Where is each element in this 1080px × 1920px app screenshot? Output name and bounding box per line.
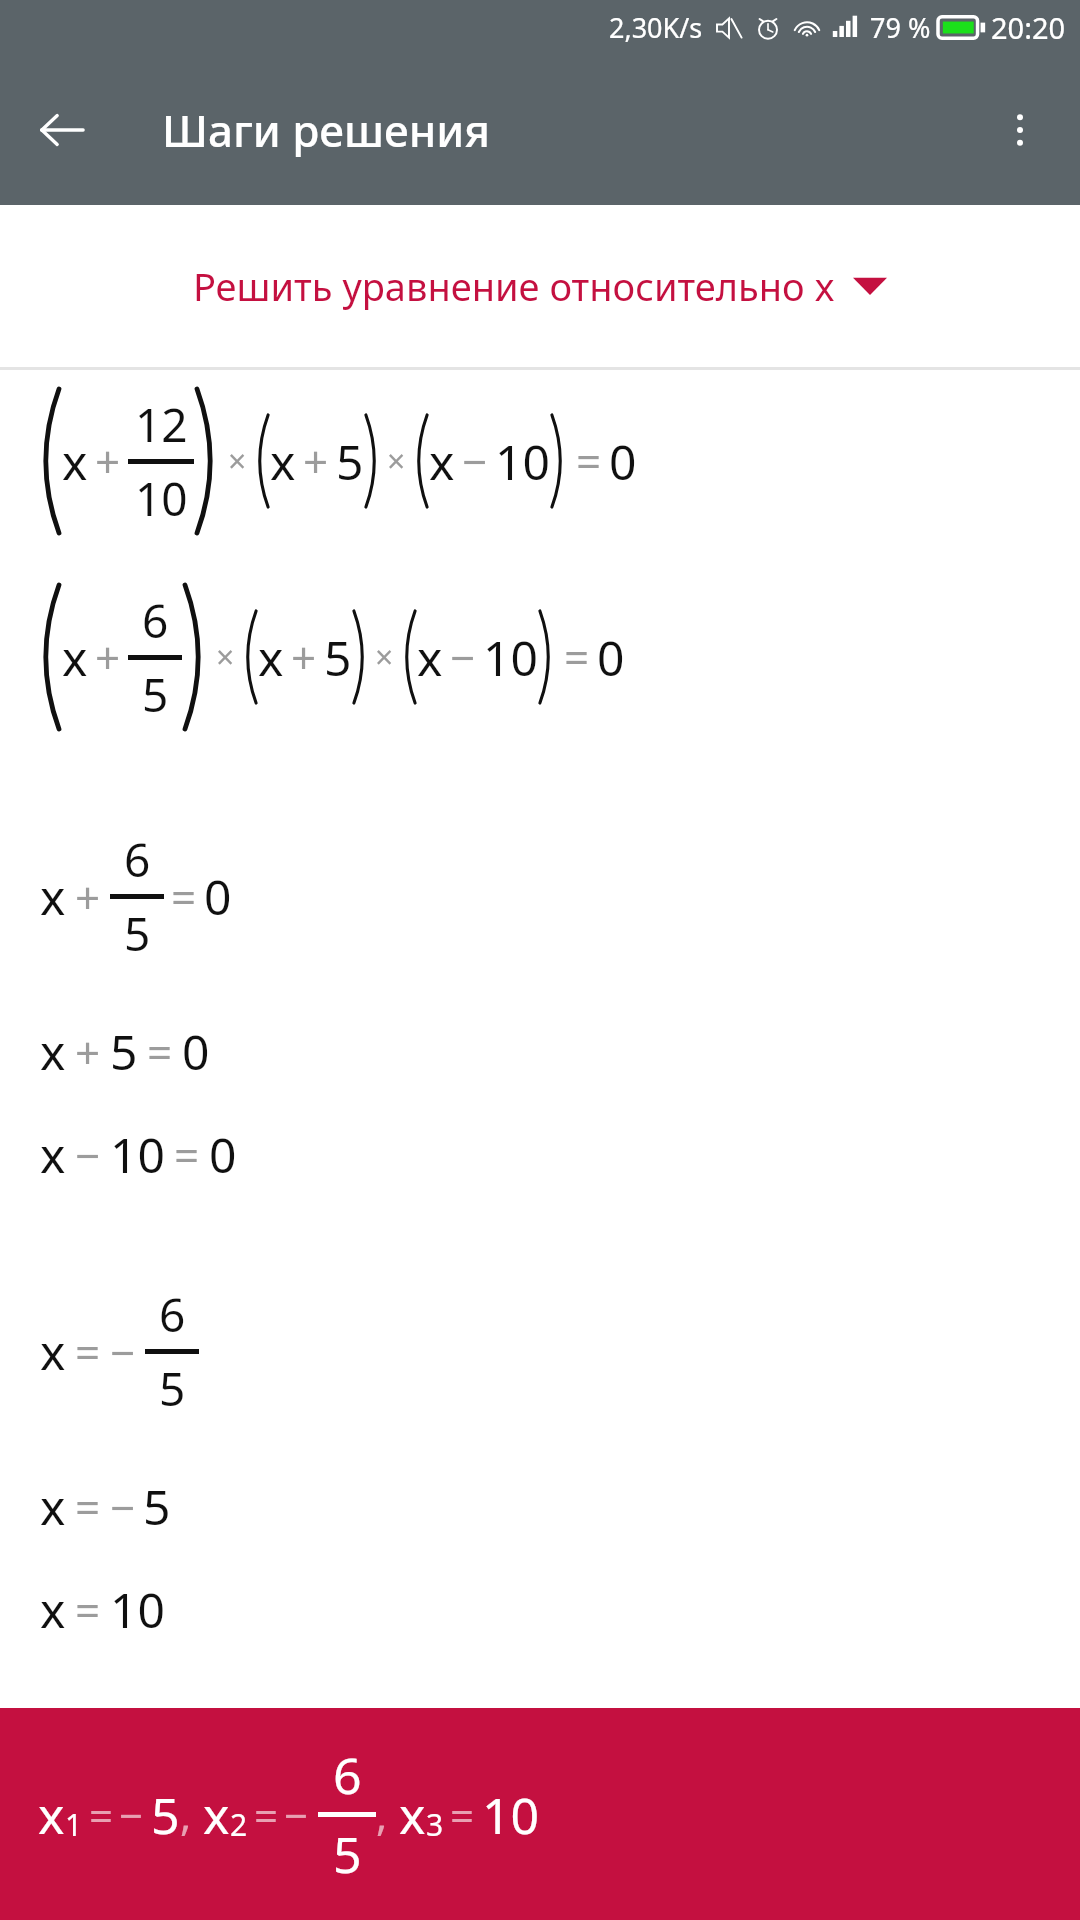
- staticText: Решить уравнение относительно x: [193, 260, 835, 312]
- staticText: 5: [110, 1019, 138, 1084]
- staticText: 2: [230, 1804, 248, 1845]
- staticText: =: [75, 1477, 101, 1537]
- staticText: 10: [482, 1781, 540, 1849]
- staticText: =: [254, 1786, 279, 1843]
- staticText: 5: [324, 625, 352, 690]
- staticText: 5: [333, 1820, 362, 1888]
- staticText: =: [147, 1022, 173, 1082]
- staticText: −: [119, 1786, 144, 1843]
- staticText: −: [110, 1322, 136, 1382]
- staticText: ,: [180, 1786, 192, 1843]
- staticText: 12: [135, 393, 188, 456]
- staticText: −: [462, 431, 488, 491]
- staticText: 5: [142, 663, 169, 726]
- staticText: 2,30K/s: [609, 9, 703, 46]
- staticText: =: [174, 1125, 200, 1185]
- staticText: =: [450, 1786, 475, 1843]
- staticText: ×: [387, 439, 406, 483]
- staticText: 10: [110, 1122, 165, 1187]
- staticText: x: [399, 1781, 426, 1849]
- staticText: 5: [124, 902, 151, 965]
- staticText: =: [564, 627, 590, 687]
- staticText: 5: [143, 1474, 171, 1539]
- staticText: x: [40, 864, 66, 929]
- staticText: 10: [135, 467, 188, 530]
- staticText: 6: [333, 1741, 362, 1809]
- staticText: x: [40, 1319, 66, 1384]
- staticText: ×: [216, 635, 235, 679]
- button[interactable]: Решить уравнение относительно x: [173, 248, 907, 324]
- staticText: x: [62, 429, 88, 494]
- staticText: =: [75, 1580, 101, 1640]
- staticText: ×: [375, 635, 394, 679]
- staticText: 6: [142, 589, 169, 652]
- staticText: x: [203, 1781, 230, 1849]
- staticText: 10: [495, 429, 550, 494]
- button[interactable]: Back: [26, 94, 98, 166]
- staticText: +: [75, 1022, 101, 1082]
- button[interactable]: x: [0, 1708, 1080, 1920]
- staticText: −: [450, 627, 476, 687]
- staticText: x: [40, 1122, 66, 1187]
- staticText: x: [270, 429, 296, 494]
- staticText: −: [284, 1786, 309, 1843]
- staticText: 5: [151, 1781, 180, 1849]
- staticText: x: [38, 1781, 65, 1849]
- staticText: 0: [597, 625, 625, 690]
- staticText: x: [429, 429, 455, 494]
- staticText: x: [40, 1019, 66, 1084]
- staticText: +: [75, 867, 101, 927]
- staticText: x: [40, 1474, 66, 1539]
- staticText: 0: [209, 1122, 237, 1187]
- staticText: 6: [159, 1283, 186, 1346]
- staticText: 0: [204, 864, 232, 929]
- staticText: =: [576, 431, 602, 491]
- staticText: =: [89, 1786, 114, 1843]
- staticText: +: [303, 431, 329, 491]
- staticText: +: [95, 627, 121, 687]
- staticText: x: [258, 625, 284, 690]
- staticText: +: [291, 627, 317, 687]
- staticText: 3: [426, 1804, 444, 1845]
- staticText: x: [40, 1577, 66, 1642]
- staticText: 0: [609, 429, 637, 494]
- staticText: 1: [65, 1804, 83, 1845]
- staticText: Шаги решения: [162, 100, 491, 160]
- button[interactable]: More options: [984, 94, 1056, 166]
- staticText: x: [417, 625, 443, 690]
- staticText: 79 %: [870, 9, 931, 46]
- staticText: =: [75, 1322, 101, 1382]
- staticText: ×: [228, 439, 247, 483]
- staticText: +: [95, 431, 121, 491]
- staticText: =: [171, 867, 197, 927]
- staticText: 10: [483, 625, 538, 690]
- staticText: 6: [124, 828, 151, 891]
- staticText: −: [110, 1477, 136, 1537]
- staticText: ,: [376, 1786, 388, 1843]
- staticText: 0: [182, 1019, 210, 1084]
- staticText: −: [75, 1125, 101, 1185]
- staticText: 20:20: [991, 8, 1066, 47]
- staticText: 5: [159, 1357, 186, 1420]
- staticText: 5: [336, 429, 364, 494]
- staticText: x: [62, 625, 88, 690]
- staticText: 10: [110, 1577, 165, 1642]
